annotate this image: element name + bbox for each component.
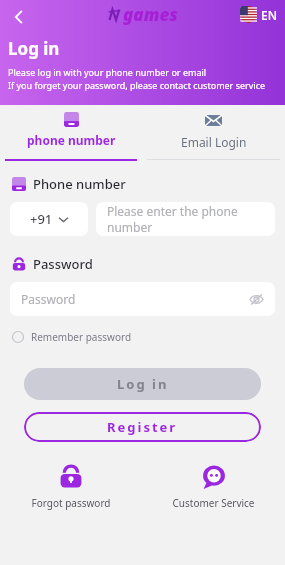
staticText: Forgot password — [31, 496, 111, 510]
button[interactable]: Register — [24, 412, 261, 442]
staticText: +91 — [30, 210, 53, 228]
staticText: EN — [261, 7, 277, 23]
button[interactable]: phone number — [0, 105, 142, 161]
staticText: Customer Service — [172, 496, 255, 510]
button[interactable]: Remember password — [10, 327, 134, 347]
button[interactable]: Forgot password — [0, 464, 142, 510]
staticText: Password — [21, 291, 76, 307]
staticText: Please enter the phone number — [107, 203, 275, 235]
button[interactable]: Show password — [247, 290, 265, 308]
staticText: If you forget your password, please cont… — [8, 79, 266, 91]
button[interactable]: Email Login — [142, 105, 285, 161]
button[interactable]: Log in — [24, 368, 261, 400]
staticText: Please log in with your phone number or … — [8, 66, 207, 78]
staticText: phone number — [27, 132, 116, 148]
staticText: Register — [107, 418, 178, 436]
button[interactable]: EN — [238, 4, 279, 25]
button[interactable]: Back — [4, 2, 34, 32]
staticText: games — [123, 3, 178, 26]
button[interactable]: Password — [10, 282, 275, 316]
staticText: Log in — [117, 375, 169, 393]
button[interactable]: Please enter the phone number — [96, 202, 275, 236]
staticText: Remember password — [31, 330, 132, 344]
staticText: Email Login — [181, 134, 247, 150]
staticText: Password — [33, 255, 93, 273]
staticText: Log in — [8, 37, 60, 60]
staticText: Phone number — [33, 175, 126, 193]
button[interactable]: +91 — [10, 202, 88, 236]
button[interactable]: Customer Service — [142, 464, 285, 510]
